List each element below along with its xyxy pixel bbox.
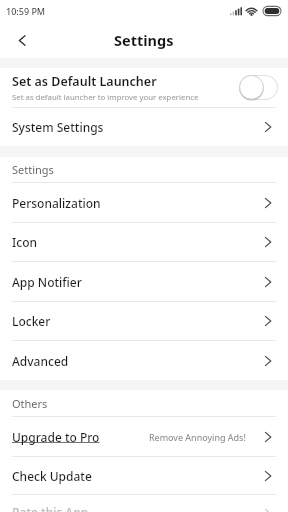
button[interactable]: Personalization: [0, 183, 288, 222]
staticText: Settings: [12, 162, 54, 177]
button[interactable]: Rate this App: [0, 495, 288, 512]
staticText: Check Update: [12, 468, 92, 484]
staticText: System Settings: [12, 119, 104, 135]
staticText: Personalization: [12, 195, 101, 211]
staticText: Rate this App: [12, 504, 89, 512]
staticText: Set as Default Launcher: [12, 73, 157, 90]
staticText: Set as default launcher to improve your …: [12, 92, 199, 103]
staticText: Locker: [12, 313, 51, 329]
staticText: Settings: [114, 30, 174, 50]
staticText: Upgrade to Pro: [12, 429, 100, 445]
button[interactable]: System Settings: [0, 108, 288, 146]
staticText: Icon: [12, 234, 37, 250]
staticText: Remove Annoying Ads!: [149, 431, 246, 443]
staticText: Advanced: [12, 353, 69, 369]
button[interactable]: App Notifier: [0, 262, 288, 301]
button[interactable]: [238, 74, 279, 101]
button[interactable]: Set as Default Launcher: [0, 68, 288, 107]
button[interactable]: [12, 30, 32, 50]
button[interactable]: Icon: [0, 223, 288, 261]
staticText: App Notifier: [12, 274, 82, 290]
button[interactable]: Locker: [0, 302, 288, 340]
staticText: Others: [12, 396, 48, 411]
button[interactable]: Upgrade to Pro: [0, 417, 288, 456]
staticText: 10:59 PM: [6, 5, 46, 17]
button[interactable]: Advanced: [0, 341, 288, 380]
button[interactable]: Check Update: [0, 457, 288, 494]
